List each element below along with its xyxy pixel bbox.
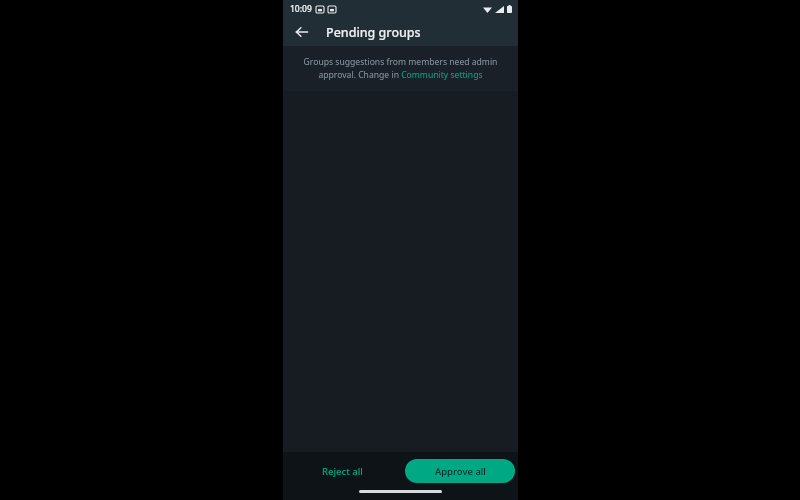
button[interactable]: Back (289, 19, 315, 45)
staticText: Pending groups (326, 24, 421, 41)
staticText: Reject all (322, 465, 363, 478)
staticText: Approve all (435, 465, 486, 478)
button[interactable]: Reject all (322, 459, 363, 483)
button[interactable]: Approve all (405, 459, 515, 483)
staticText: Groups suggestions from members need adm… (300, 56, 501, 81)
button[interactable]: Groups suggestions from members need adm… (283, 46, 518, 91)
staticText: 10:09 (290, 3, 312, 15)
